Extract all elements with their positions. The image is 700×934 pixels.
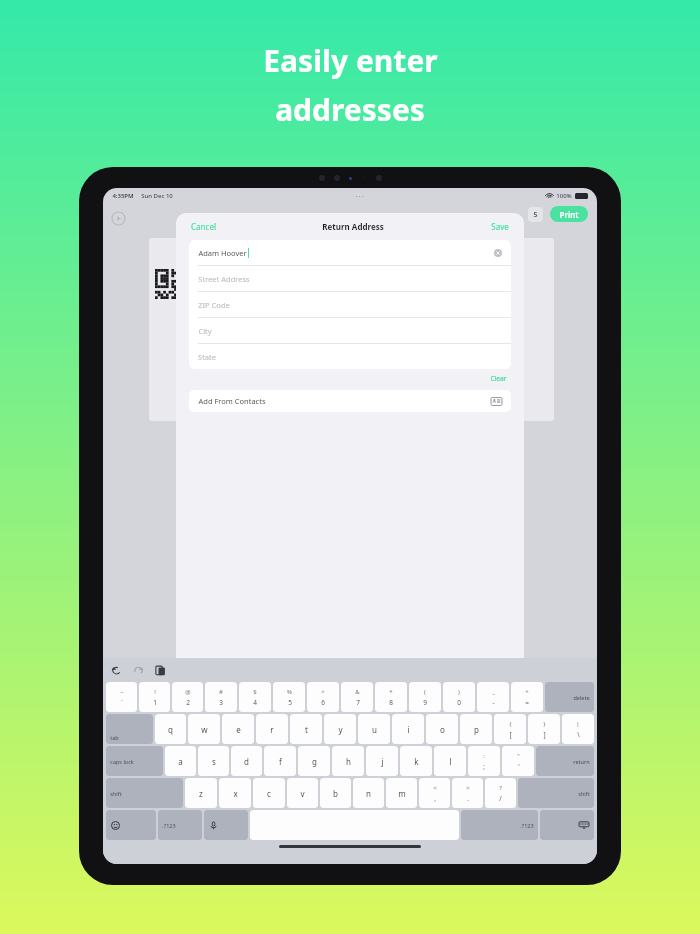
button[interactable]: m — [386, 778, 417, 808]
button[interactable]: Cancel — [189, 219, 218, 234]
staticText: } — [543, 720, 546, 728]
button[interactable]: r — [256, 714, 288, 744]
button[interactable]: Print — [550, 206, 588, 222]
button[interactable]: Undo — [111, 665, 122, 676]
button[interactable]: x — [219, 778, 251, 808]
button[interactable]: State — [189, 344, 511, 369]
staticText: .?123 — [520, 822, 534, 829]
button[interactable]: f — [264, 746, 296, 776]
button[interactable]: Clear — [488, 373, 509, 384]
staticText: m — [398, 788, 406, 799]
button[interactable]: z — [185, 778, 217, 808]
staticText: $ — [253, 688, 257, 696]
button[interactable]: | — [562, 714, 594, 744]
staticText: Street Address — [198, 274, 250, 284]
button[interactable]: .?123 — [158, 810, 202, 840]
button[interactable]: ^ — [307, 682, 339, 712]
staticText: = — [525, 698, 529, 707]
button[interactable]: ZIP Code — [189, 292, 511, 317]
button[interactable]: " — [502, 746, 534, 776]
button[interactable]: a — [165, 746, 196, 776]
staticText: \ — [577, 730, 580, 739]
button[interactable]: { — [494, 714, 526, 744]
button[interactable]: * — [375, 682, 407, 712]
button[interactable]: j — [366, 746, 398, 776]
button[interactable]: : — [468, 746, 500, 776]
button[interactable]: ( — [409, 682, 441, 712]
button[interactable]: u — [358, 714, 390, 744]
button[interactable]: p — [460, 714, 492, 744]
button[interactable]: l — [434, 746, 466, 776]
button[interactable]: s — [198, 746, 229, 776]
button[interactable]: Street Address — [189, 266, 511, 291]
staticText: 0 — [457, 698, 461, 707]
button[interactable]: w — [188, 714, 220, 744]
button[interactable]: shift — [518, 778, 594, 808]
button[interactable]: > — [452, 778, 483, 808]
button[interactable]: < — [419, 778, 450, 808]
button[interactable]: ! — [139, 682, 170, 712]
staticText: delete — [573, 694, 590, 701]
button[interactable]: t — [290, 714, 322, 744]
button[interactable]: ? — [485, 778, 516, 808]
button[interactable]: Paste — [155, 665, 166, 676]
button[interactable]: e — [222, 714, 254, 744]
staticText: Return Address — [322, 221, 384, 232]
button[interactable]: Adam Hoover — [189, 240, 511, 265]
staticText: Print — [559, 209, 579, 220]
staticText: ? — [499, 784, 502, 792]
button[interactable]: # — [205, 682, 237, 712]
button[interactable]: Keyboard key — [106, 810, 156, 840]
staticText: b — [333, 788, 338, 799]
button[interactable]: d — [231, 746, 262, 776]
button[interactable]: 5 — [528, 207, 543, 222]
button[interactable]: _ — [477, 682, 509, 712]
staticText: % — [287, 688, 292, 696]
staticText: z — [199, 788, 203, 799]
button[interactable]: shift — [106, 778, 183, 808]
button[interactable]: } — [528, 714, 560, 744]
staticText: , — [434, 794, 436, 803]
button[interactable]: return — [536, 746, 594, 776]
button[interactable]: o — [426, 714, 458, 744]
staticText: > — [466, 784, 470, 792]
button[interactable]: % — [273, 682, 305, 712]
button[interactable]: $ — [239, 682, 271, 712]
button[interactable]: Keyboard key — [540, 810, 594, 840]
button[interactable]: n — [353, 778, 384, 808]
staticText: t — [305, 724, 308, 735]
button[interactable]: .?123 — [461, 810, 538, 840]
staticText: Adam Hoover — [198, 248, 247, 258]
staticText: i — [407, 724, 410, 735]
button[interactable]: v — [287, 778, 318, 808]
button[interactable]: y — [324, 714, 356, 744]
button[interactable]: i — [392, 714, 424, 744]
button[interactable]: delete — [545, 682, 594, 712]
staticText: 9 — [423, 698, 427, 707]
button[interactable]: b — [320, 778, 351, 808]
button[interactable]: ) — [443, 682, 475, 712]
button[interactable]: + — [511, 682, 543, 712]
button[interactable]: Save — [489, 219, 511, 234]
button[interactable]: k — [400, 746, 432, 776]
staticText: * — [389, 688, 393, 696]
button[interactable]: h — [332, 746, 364, 776]
button[interactable]: Keyboard key — [204, 810, 248, 840]
button[interactable]: Add From Contacts — [189, 390, 511, 412]
button[interactable]: q — [155, 714, 186, 744]
staticText: shift — [578, 790, 590, 797]
staticText: ' — [518, 762, 520, 771]
button[interactable]: tab — [106, 714, 153, 744]
staticText: 4:35PM — [112, 192, 134, 200]
button[interactable]: g — [298, 746, 330, 776]
button[interactable]: @ — [172, 682, 203, 712]
button[interactable]: Play — [112, 212, 125, 225]
button[interactable]: caps lock — [106, 746, 163, 776]
button[interactable]: c — [253, 778, 285, 808]
staticText: ) — [458, 688, 460, 696]
button[interactable]: & — [341, 682, 373, 712]
button[interactable]: ~ — [106, 682, 137, 712]
button[interactable]: Redo — [133, 665, 144, 676]
